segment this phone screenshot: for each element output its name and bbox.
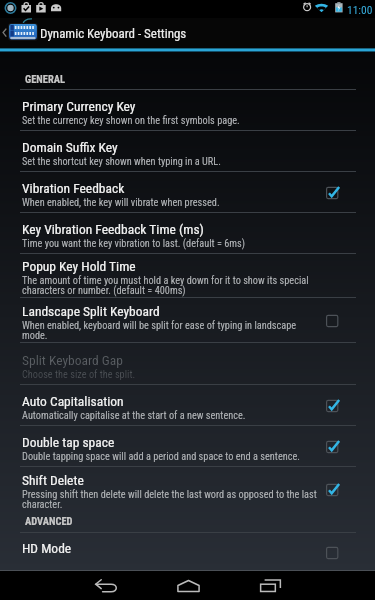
button[interactable]: Landscape Split Keyboard (0, 298, 375, 342)
staticText: Set the currency key shown on the first … (22, 114, 240, 126)
staticText: When enabled, keyboard will be split for… (22, 319, 318, 342)
button[interactable]: Popup Key Hold Time (0, 254, 375, 297)
staticText: Automatically capitalise at the start of… (22, 409, 246, 421)
staticText: Auto Capitalisation (22, 393, 124, 409)
staticText: Double tap space (22, 434, 115, 450)
button[interactable]: HD Mode (0, 533, 375, 570)
staticText: Key Vibration Feedback Time (ms) (22, 221, 204, 237)
button[interactable]: Auto Capitalisation (0, 385, 375, 425)
staticText: Popup Key Hold Time (22, 258, 136, 274)
staticText: Dynamic Keyboard - Settings (40, 26, 187, 41)
button[interactable]: Domain Suffix Key (0, 131, 375, 171)
staticText: GENERAL (25, 73, 65, 85)
button[interactable]: Home (147, 571, 229, 600)
staticText: Double tapping space will add a period a… (22, 450, 301, 462)
button[interactable]: Double tap space (0, 426, 375, 466)
button[interactable]: Split Keyboard Gap (0, 343, 375, 384)
staticText: Split Keyboard Gap (22, 352, 123, 368)
staticText: HD Mode (22, 540, 72, 556)
staticText: Landscape Split Keyboard (22, 303, 160, 319)
staticText: Primary Currency Key (22, 98, 136, 114)
button[interactable]: Recent apps (229, 571, 311, 600)
button[interactable]: Vibration Feedback (0, 172, 375, 212)
staticText: Set the shortcut key shown when typing i… (22, 155, 221, 167)
staticText: Vibration Feedback (22, 180, 125, 196)
staticText: Shift Delete (22, 472, 84, 488)
staticText: Domain Suffix Key (22, 139, 118, 155)
staticText: ADVANCED (25, 515, 73, 527)
staticText: Pressing shift then delete will delete t… (22, 488, 318, 511)
button[interactable]: Back (65, 571, 147, 600)
other: Navigate up (0, 18, 8, 48)
staticText: When enabled, the key will vibrate when … (22, 196, 220, 208)
button[interactable]: Primary Currency Key (0, 90, 375, 130)
button[interactable]: Shift Delete (0, 467, 375, 511)
staticText: Choose the size of the split. (22, 368, 136, 380)
staticText: 11:00 (347, 3, 373, 16)
button[interactable]: Key Vibration Feedback Time (ms) (0, 213, 375, 253)
staticText: Time you want the key vibration to last.… (22, 237, 246, 249)
staticText: The amount of time you must hold a key d… (22, 274, 318, 297)
